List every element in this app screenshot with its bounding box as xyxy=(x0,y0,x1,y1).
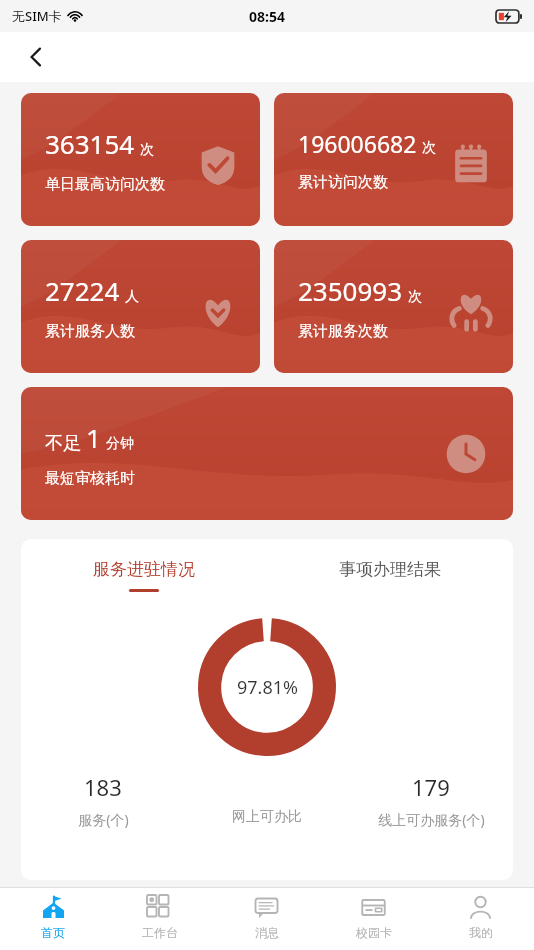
button[interactable]: 事项办理结果 xyxy=(267,555,513,596)
staticText: 人 xyxy=(125,288,139,306)
staticText: 2350993 xyxy=(298,273,403,308)
button[interactable]: 196006682 xyxy=(274,93,513,226)
staticText: 校园卡 xyxy=(356,925,392,940)
staticText: 不足 xyxy=(45,432,81,455)
staticText: 线上可办服务(个) xyxy=(378,810,485,829)
staticText: 179 xyxy=(412,772,450,802)
staticText: 无SIM卡 xyxy=(12,7,62,25)
staticText: 27224 xyxy=(45,273,120,308)
button[interactable]: 首页 xyxy=(0,888,106,950)
staticText: 分钟 xyxy=(106,435,134,453)
staticText: 97.81% xyxy=(237,675,298,700)
staticText: 我的 xyxy=(469,925,493,940)
button[interactable]: 工作台 xyxy=(106,888,213,950)
staticText: 首页 xyxy=(41,925,65,940)
staticText: 次 xyxy=(140,141,154,159)
staticText: 单日最高访问次数 xyxy=(45,175,165,194)
staticText: 196006682 xyxy=(298,128,417,159)
staticText: 次 xyxy=(422,139,436,157)
staticText: 累计访问次数 xyxy=(298,173,388,192)
staticText: 消息 xyxy=(255,925,279,940)
staticText: 363154 xyxy=(45,126,135,161)
staticText: 08:54 xyxy=(249,7,285,26)
staticText: 网上可办比 xyxy=(232,808,302,826)
button[interactable]: 消息 xyxy=(213,888,320,950)
button[interactable]: 2350993 xyxy=(274,240,513,373)
staticText: 服务(个) xyxy=(78,810,129,829)
staticText: 最短审核耗时 xyxy=(45,469,135,488)
button[interactable]: 27224 xyxy=(21,240,260,373)
button[interactable]: 不足 xyxy=(21,387,513,520)
staticText: 工作台 xyxy=(142,925,178,940)
staticText: 服务进驻情况 xyxy=(93,559,195,580)
staticText: 次 xyxy=(408,288,422,306)
button[interactable]: 服务进驻情况 xyxy=(21,555,267,596)
button[interactable]: 我的 xyxy=(427,888,534,950)
button[interactable]: Back xyxy=(16,37,56,77)
button[interactable]: 校园卡 xyxy=(320,888,427,950)
staticText: 累计服务人数 xyxy=(45,322,135,341)
staticText: 累计服务次数 xyxy=(298,322,388,341)
button[interactable]: 363154 xyxy=(21,93,260,226)
staticText: 1 xyxy=(86,420,101,455)
staticText: 事项办理结果 xyxy=(339,559,441,580)
staticText: 183 xyxy=(84,772,122,802)
